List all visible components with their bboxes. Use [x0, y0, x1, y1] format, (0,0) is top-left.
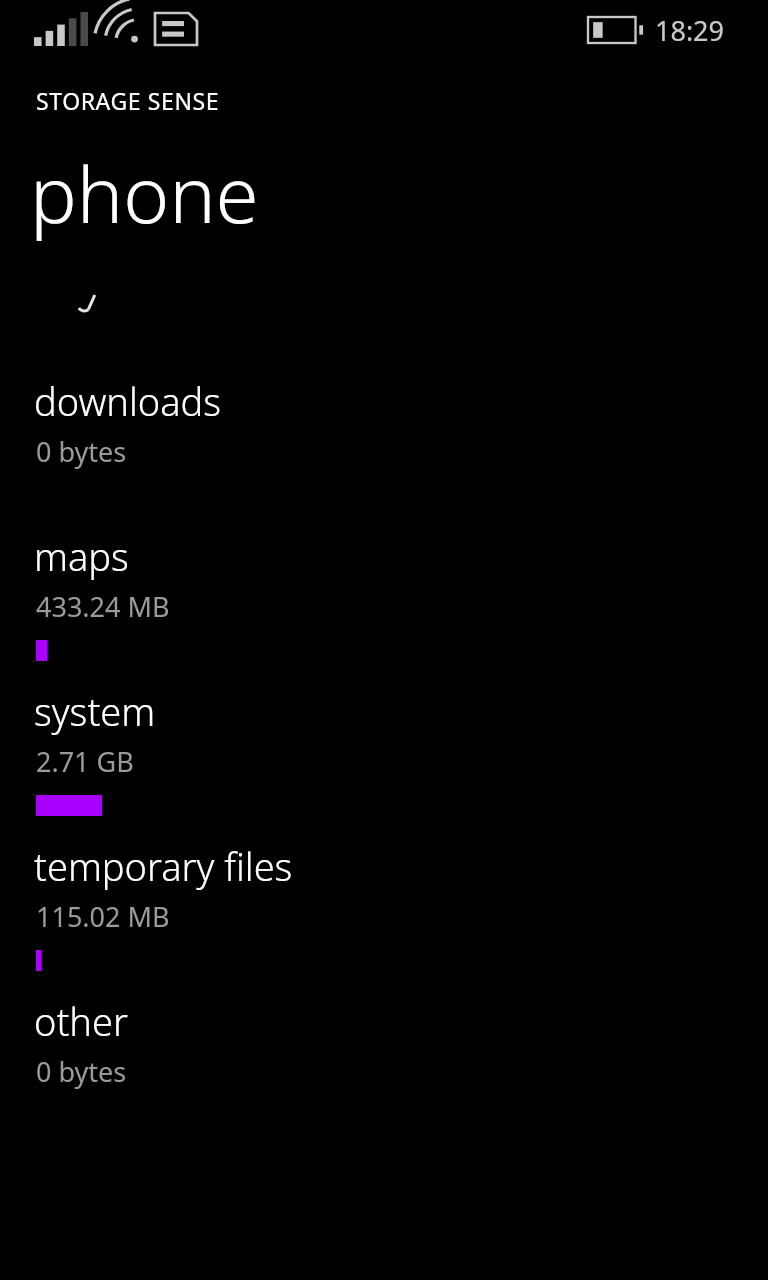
button[interactable]: system: [0, 685, 768, 835]
staticText: phone: [30, 140, 259, 246]
staticText: 0 bytes: [36, 433, 127, 470]
staticText: downloads: [34, 375, 222, 427]
button[interactable]: other: [0, 995, 768, 1145]
staticText: 115.02 MB: [36, 898, 170, 935]
staticText: 433.24 MB: [36, 588, 170, 625]
button[interactable]: maps: [0, 530, 768, 680]
other: Cellular signal: [34, 12, 88, 46]
staticText: other: [34, 995, 128, 1047]
button[interactable]: temporary files: [0, 840, 768, 990]
staticText: 0 bytes: [36, 1053, 127, 1090]
staticText: temporary files: [34, 840, 293, 892]
other: SIM card: [155, 13, 197, 45]
staticText: 18:29: [655, 12, 725, 49]
staticText: maps: [34, 530, 129, 582]
button[interactable]: downloads: [0, 375, 768, 525]
other: Battery: [588, 17, 642, 43]
other: Wi-Fi: [100, 12, 144, 46]
staticText: 2.71 GB: [36, 743, 134, 780]
staticText: system: [34, 685, 156, 737]
staticText: STORAGE SENSE: [36, 85, 220, 116]
